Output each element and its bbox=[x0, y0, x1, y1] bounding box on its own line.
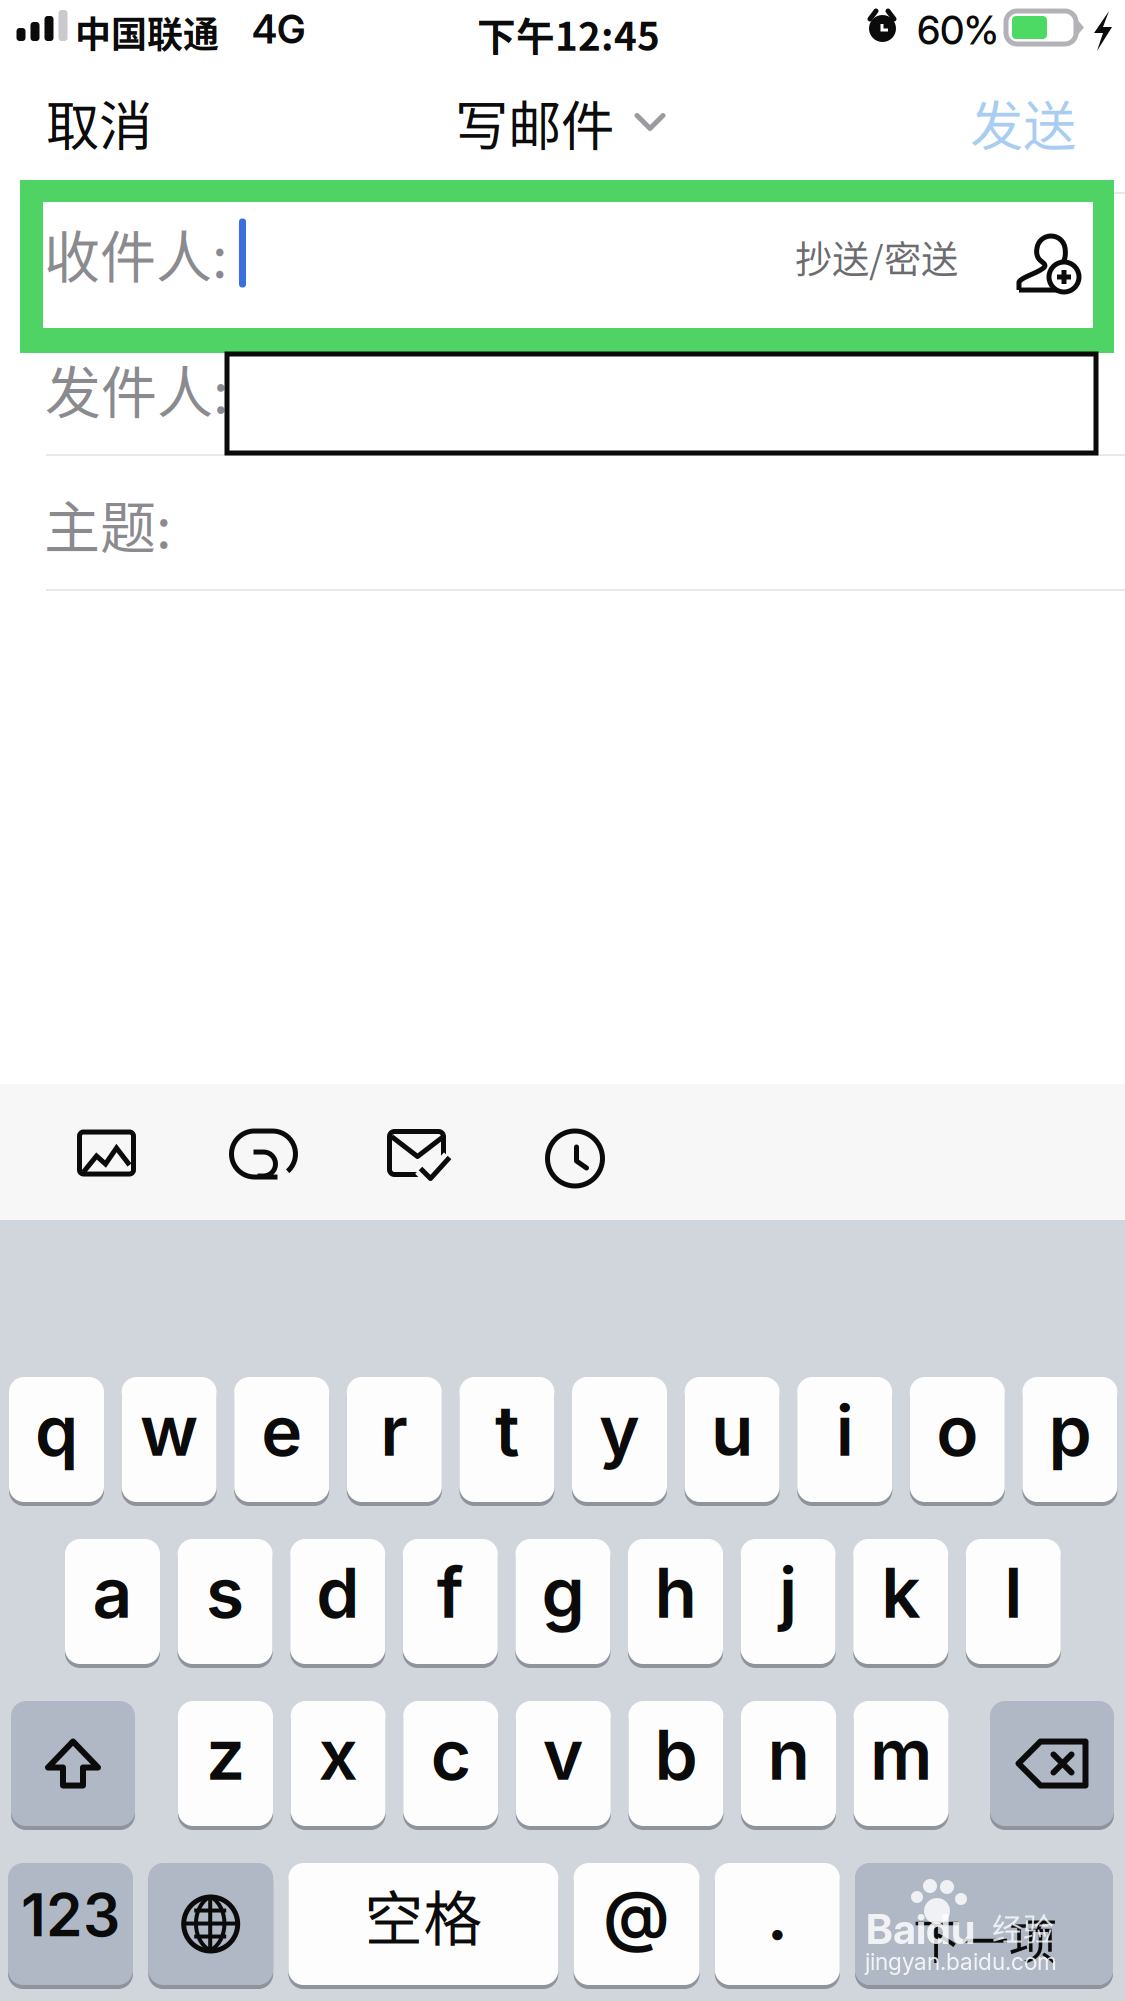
button[interactable]: Attach file bbox=[186, 1084, 341, 1220]
staticText: 发件人: bbox=[45, 348, 229, 429]
staticText: g bbox=[541, 1551, 584, 1634]
staticText: t bbox=[495, 1389, 519, 1472]
button[interactable]: q bbox=[9, 1377, 104, 1506]
button[interactable]: @ bbox=[574, 1863, 700, 1989]
staticText: e bbox=[261, 1389, 302, 1472]
button[interactable]: f bbox=[403, 1539, 498, 1668]
button[interactable]: a bbox=[65, 1539, 160, 1668]
staticText: jingyan.baidu.com bbox=[865, 1948, 1057, 1975]
button[interactable]: s bbox=[178, 1539, 273, 1668]
button[interactable]: 取消 bbox=[0, 64, 214, 181]
button[interactable]: t bbox=[459, 1377, 554, 1506]
button[interactable]: b bbox=[628, 1701, 723, 1830]
button[interactable]: 抄送/密送 bbox=[781, 182, 972, 308]
staticText: m bbox=[870, 1713, 932, 1796]
staticText: 收件人: bbox=[44, 212, 228, 294]
staticText: j bbox=[779, 1551, 797, 1634]
staticText: f bbox=[437, 1551, 464, 1634]
button[interactable]: Insert photo bbox=[29, 1084, 184, 1220]
staticText: 主题: bbox=[44, 483, 172, 564]
button[interactable]: m bbox=[854, 1701, 949, 1830]
staticText: k bbox=[881, 1551, 920, 1634]
staticText: 123 bbox=[21, 1879, 120, 1950]
staticText: w bbox=[140, 1389, 198, 1472]
button[interactable]: w bbox=[122, 1377, 217, 1506]
button[interactable]: p bbox=[1022, 1377, 1117, 1506]
staticText: r bbox=[380, 1389, 408, 1472]
staticText: i bbox=[836, 1389, 854, 1472]
staticText: 中国联通 bbox=[75, 6, 219, 58]
staticText: 收件人: bbox=[44, 204, 228, 286]
button[interactable]: k bbox=[853, 1539, 948, 1668]
staticText: p bbox=[1048, 1389, 1091, 1472]
button[interactable]: 抄送/密送 bbox=[781, 190, 972, 316]
staticText: v bbox=[543, 1713, 584, 1796]
staticText: o bbox=[936, 1389, 978, 1472]
staticText: 空格 bbox=[364, 1872, 482, 1957]
staticText: . bbox=[767, 1875, 788, 1955]
button[interactable]: u bbox=[685, 1377, 780, 1506]
button[interactable]: z bbox=[178, 1701, 273, 1830]
staticText: q bbox=[35, 1389, 78, 1472]
staticText: h bbox=[654, 1551, 696, 1634]
staticText: s bbox=[206, 1551, 244, 1634]
button[interactable]: Add recipients bbox=[972, 190, 1083, 316]
staticText: l bbox=[1004, 1551, 1022, 1634]
button[interactable]: r bbox=[347, 1377, 442, 1506]
staticText: 取消 bbox=[46, 84, 152, 161]
staticText: u bbox=[711, 1389, 753, 1472]
staticText: 发送 bbox=[970, 84, 1076, 161]
button[interactable]: Switch keyboard bbox=[148, 1863, 273, 1989]
staticText: 4G bbox=[252, 6, 305, 53]
button[interactable]: x bbox=[291, 1701, 386, 1830]
button[interactable]: Schedule send bbox=[500, 1084, 655, 1220]
staticText: z bbox=[206, 1713, 245, 1796]
staticText: 抄送/密送 bbox=[795, 230, 958, 284]
staticText: 下午12:45 bbox=[477, 6, 660, 62]
button[interactable]: Next field bbox=[855, 1863, 1113, 1989]
button[interactable]: 写邮件 bbox=[431, 64, 694, 181]
button[interactable]: Add recipients bbox=[972, 182, 1083, 308]
staticText: d bbox=[316, 1551, 359, 1634]
button[interactable]: Request read receipt bbox=[344, 1084, 499, 1220]
staticText: y bbox=[599, 1389, 640, 1472]
button[interactable]: j bbox=[741, 1539, 836, 1668]
button[interactable]: l bbox=[966, 1539, 1061, 1668]
staticText: 60% bbox=[917, 7, 999, 54]
button[interactable]: v bbox=[516, 1701, 611, 1830]
staticText: @ bbox=[603, 1875, 670, 1955]
staticText: n bbox=[767, 1713, 809, 1796]
staticText: 写邮件 bbox=[455, 84, 614, 161]
staticText: 抄送/密送 bbox=[795, 222, 958, 276]
button[interactable]: i bbox=[797, 1377, 892, 1506]
staticText: c bbox=[431, 1713, 471, 1796]
staticText: 经验 bbox=[992, 1905, 1054, 1949]
button[interactable]: 空格 bbox=[288, 1863, 558, 1989]
staticText: x bbox=[319, 1713, 358, 1796]
button[interactable]: . bbox=[715, 1863, 840, 1989]
button[interactable]: Shift bbox=[11, 1701, 135, 1830]
staticText: a bbox=[92, 1551, 132, 1634]
button[interactable]: 123 bbox=[8, 1863, 133, 1989]
button[interactable]: n bbox=[741, 1701, 836, 1830]
staticText: b bbox=[654, 1713, 697, 1796]
staticText: Baidu bbox=[866, 1904, 975, 1954]
button[interactable]: d bbox=[290, 1539, 385, 1668]
button[interactable]: h bbox=[628, 1539, 723, 1668]
button[interactable]: 发送 bbox=[908, 64, 1125, 181]
button[interactable]: c bbox=[403, 1701, 498, 1830]
button[interactable]: y bbox=[572, 1377, 667, 1506]
staticText: 下一项 bbox=[913, 1903, 1057, 1972]
button[interactable]: o bbox=[910, 1377, 1005, 1506]
button[interactable]: Delete bbox=[990, 1701, 1114, 1830]
button[interactable]: g bbox=[515, 1539, 610, 1668]
button[interactable]: e bbox=[234, 1377, 329, 1506]
